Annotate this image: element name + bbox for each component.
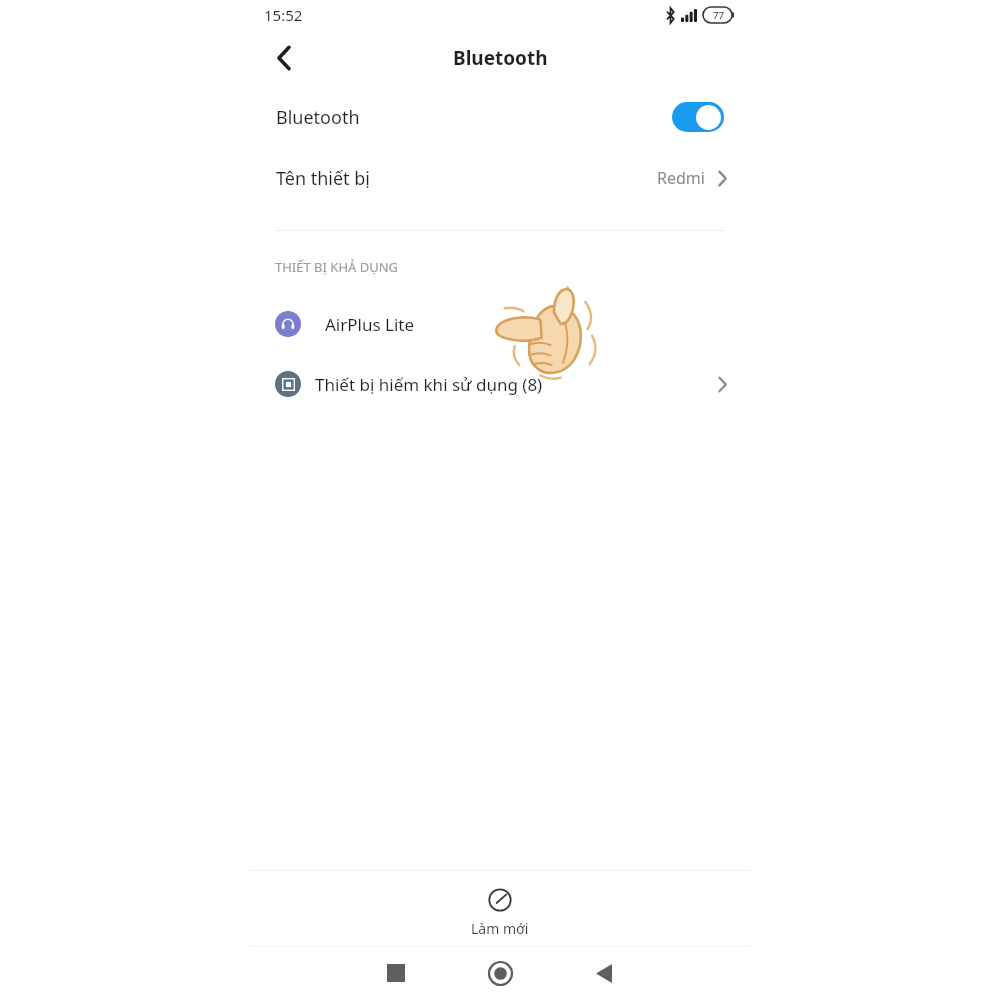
button[interactable]: AirPlus Lite — [0, 298, 1000, 350]
button[interactable]: Bluetooth on — [672, 102, 724, 132]
button[interactable]: Recent apps — [372, 949, 420, 997]
staticText: AirPlus Lite — [325, 313, 415, 336]
staticText: Bluetooth — [276, 105, 360, 130]
staticText: Thiết bị hiếm khi sử dụng (8) — [315, 373, 543, 396]
button[interactable]: Home — [476, 949, 524, 997]
staticText: Redmi — [657, 167, 705, 189]
button[interactable]: Back — [262, 36, 306, 80]
button[interactable]: Bluetooth — [0, 88, 1000, 146]
button[interactable]: Back — [580, 949, 628, 997]
staticText: 15:52 — [264, 5, 303, 25]
staticText: Bluetooth — [453, 45, 548, 71]
button[interactable]: Làm mới — [440, 878, 560, 944]
staticText: Làm mới — [471, 919, 529, 938]
button[interactable]: Thiết bị hiếm khi sử dụng (8) — [0, 358, 1000, 410]
staticText: THIẾT BỊ KHẢ DỤNG — [275, 258, 399, 276]
staticText: 77 — [713, 9, 724, 22]
button[interactable]: Tên thiết bị — [0, 148, 1000, 208]
staticText: Tên thiết bị — [276, 166, 371, 191]
